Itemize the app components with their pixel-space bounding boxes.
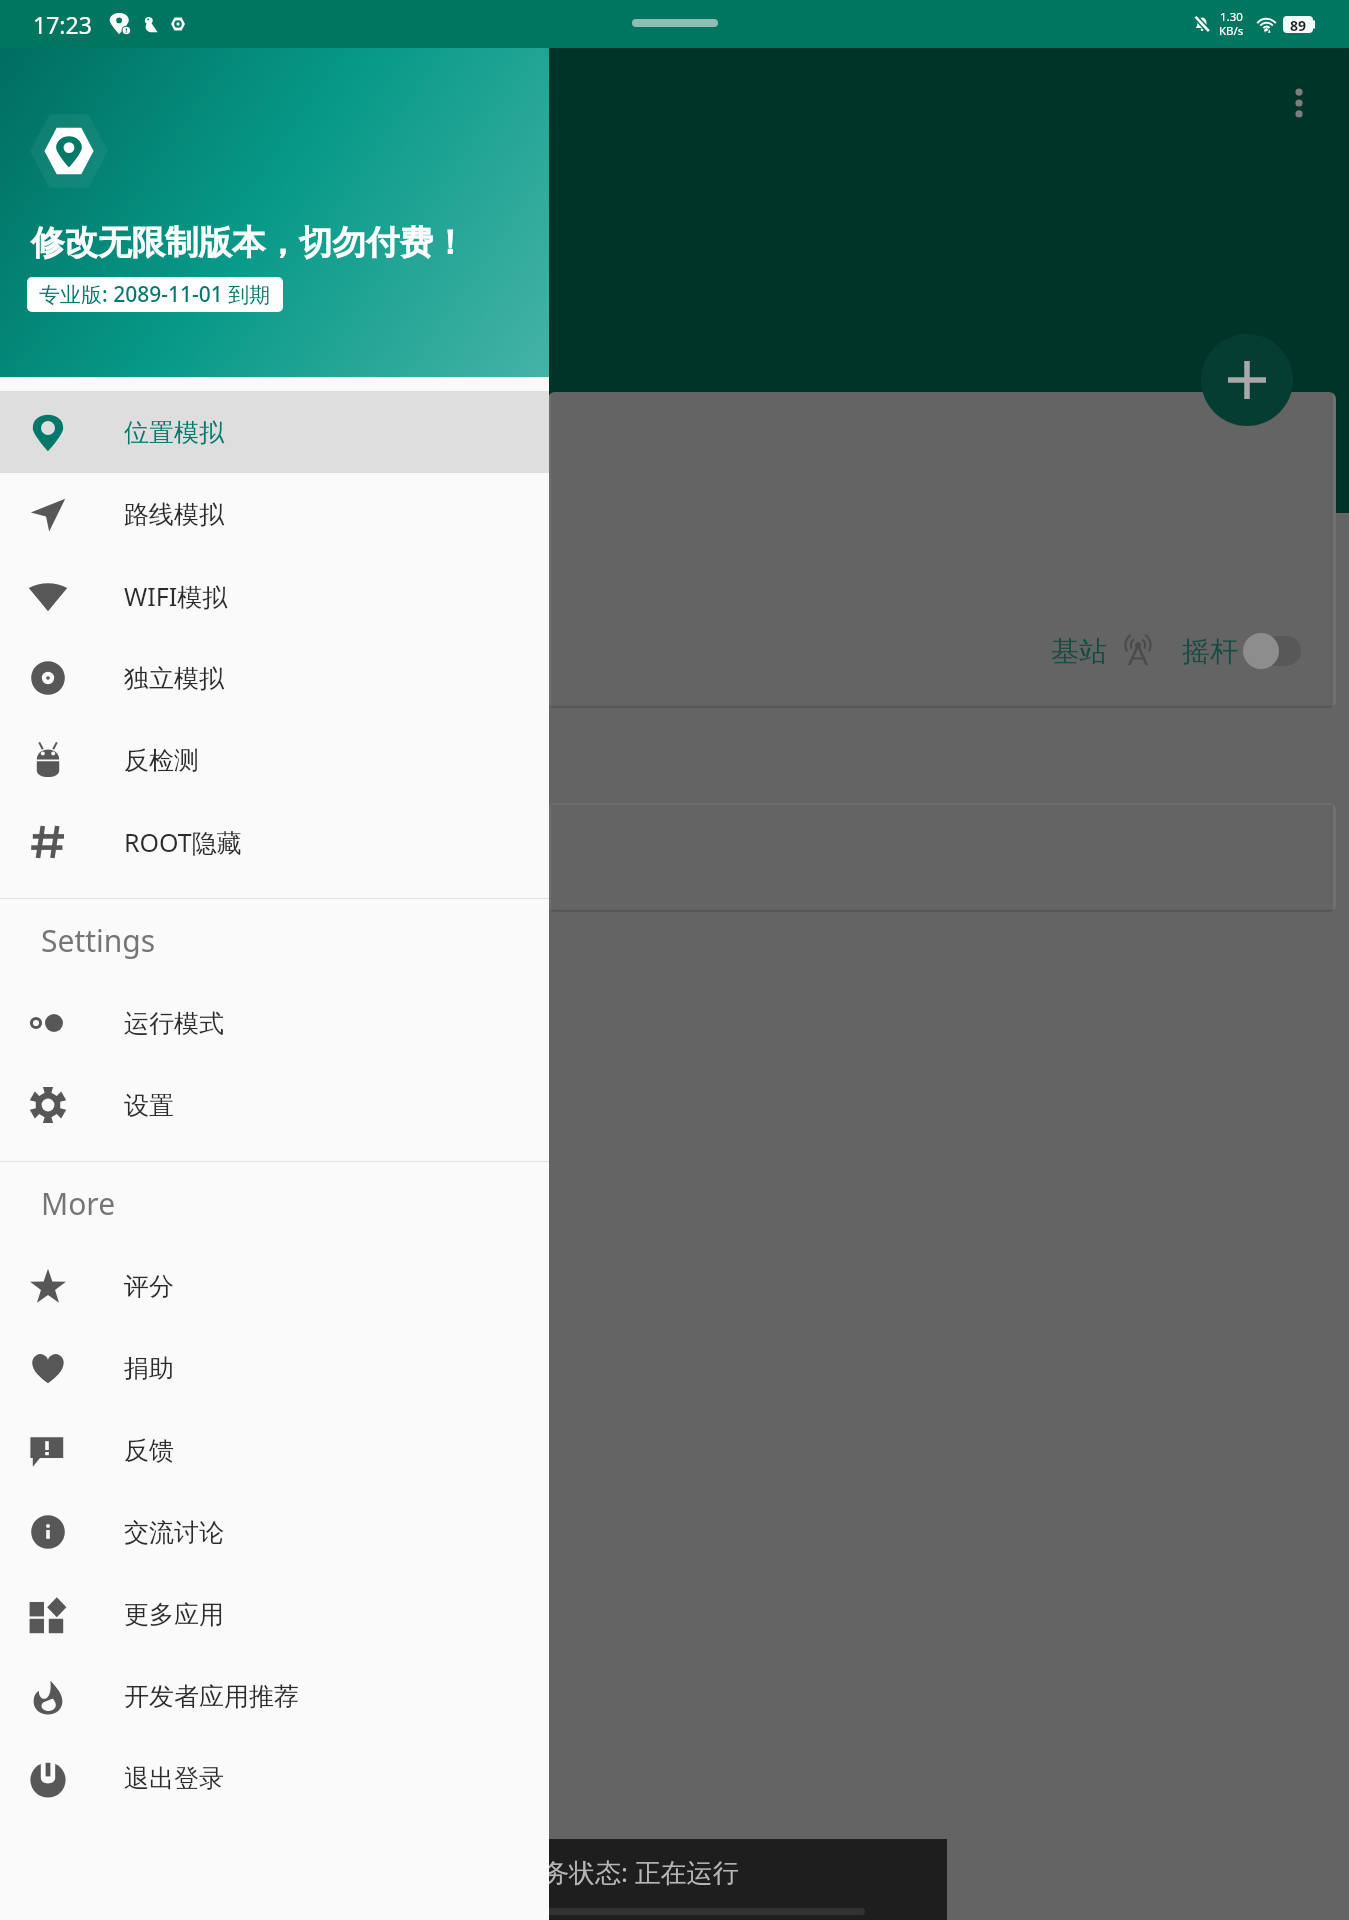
- staticText: 路线模拟: [124, 499, 224, 530]
- button[interactable]: 运行模式: [0, 982, 549, 1064]
- button[interactable]: 开发者应用推荐: [0, 1655, 549, 1737]
- staticText: 捐助: [124, 1353, 174, 1384]
- button[interactable]: 评分: [0, 1245, 549, 1327]
- staticText: 摇杆: [1182, 634, 1238, 669]
- staticText: 服务状态: 正在运行: [517, 1854, 739, 1890]
- staticText: 退出登录: [124, 1763, 224, 1794]
- staticText: 反检测: [124, 745, 199, 776]
- button[interactable]: 退出登录: [0, 1737, 549, 1819]
- staticText: KB/s: [1219, 23, 1244, 39]
- button[interactable]: 反馈: [0, 1409, 549, 1491]
- staticText: 修改无限制版本，切勿付费！: [31, 222, 467, 264]
- staticText: Settings: [41, 920, 156, 961]
- button[interactable]: 设置: [0, 1064, 549, 1146]
- staticText: 89: [1290, 16, 1307, 33]
- button[interactable]: More options: [1268, 72, 1330, 134]
- button[interactable]: 交流讨论: [0, 1491, 549, 1573]
- button[interactable]: WIFI模拟: [0, 555, 549, 637]
- button[interactable]: ROOT隐藏: [0, 801, 549, 883]
- staticText: 专业版: 2089-11-01 到期: [39, 280, 271, 309]
- staticText: 位置模拟: [124, 417, 224, 448]
- staticText: 反馈: [124, 1435, 174, 1466]
- staticText: 独立模拟: [124, 663, 224, 694]
- staticText: 评分: [124, 1271, 174, 1302]
- staticText: ROOT隐藏: [124, 825, 242, 859]
- button[interactable]: 路线模拟: [0, 473, 549, 555]
- button[interactable]: 独立模拟: [0, 637, 549, 719]
- staticText: 开发者应用推荐: [124, 1681, 299, 1712]
- staticText: 运行模式: [124, 1008, 224, 1039]
- button[interactable]: 更多应用: [0, 1573, 549, 1655]
- staticText: 交流讨论: [124, 1517, 224, 1548]
- button[interactable]: 位置模拟: [0, 391, 549, 473]
- staticText: 设置: [124, 1090, 174, 1121]
- button[interactable]: 反检测: [0, 719, 549, 801]
- staticText: 更多应用: [124, 1599, 224, 1630]
- staticText: 17:23: [33, 9, 92, 40]
- button[interactable]: Add: [1201, 334, 1293, 426]
- staticText: More: [41, 1183, 116, 1224]
- staticText: 基站: [1051, 634, 1107, 669]
- staticText: WIFI模拟: [124, 579, 228, 613]
- staticText: 1.30: [1220, 9, 1243, 25]
- button[interactable]: 捐助: [0, 1327, 549, 1409]
